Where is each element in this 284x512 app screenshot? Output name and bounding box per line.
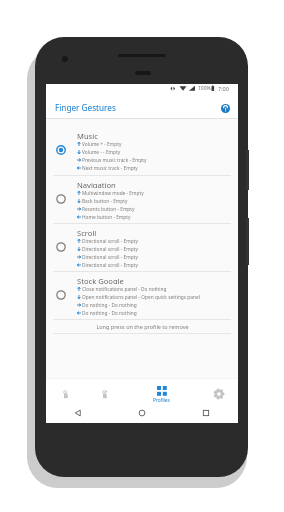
staticText: Do nothing - Do nothing	[82, 302, 137, 309]
staticText: Do nothing - Do nothing	[82, 310, 137, 317]
button[interactable]: Recents	[174, 402, 238, 423]
staticText: Long press on the profile to remove	[96, 323, 189, 330]
staticText: Directional scroll - Empty	[82, 262, 138, 269]
staticText: Stock Google	[77, 276, 124, 284]
staticText: Home button - Empty	[82, 214, 131, 221]
staticText: Navigation	[77, 180, 116, 188]
button[interactable]: Music	[46, 119, 238, 175]
staticText: Close notifications panel - Do nothing	[82, 286, 167, 293]
button[interactable]: Two finger gestures	[85, 379, 124, 402]
staticText: Next music track - Empty	[82, 165, 138, 172]
button[interactable]: Settings	[199, 379, 238, 402]
staticText: Volume + - Empty	[82, 141, 122, 148]
staticText: Previous music track - Empty	[82, 157, 147, 164]
button[interactable]: Scroll	[46, 224, 238, 271]
button[interactable]: Home	[110, 402, 174, 423]
staticText: Finger Gestures	[55, 102, 116, 113]
staticText: Profiles	[153, 397, 170, 404]
staticText: Music	[77, 131, 98, 139]
button[interactable]: Help	[218, 101, 232, 115]
staticText: Directional scroll - Empty	[82, 254, 138, 261]
staticText: Directional scroll - Empty	[82, 246, 138, 253]
staticText: Directional scroll - Empty	[82, 238, 138, 245]
button[interactable]: Single finger gestures	[46, 379, 85, 402]
button[interactable]: Stock Google	[46, 272, 238, 319]
staticText: Recents button - Empty	[82, 206, 135, 213]
staticText: Back button - Empty	[82, 198, 128, 205]
staticText: Open notifications panel - Open quick se…	[82, 294, 200, 301]
staticText: Scroll	[77, 228, 97, 236]
staticText: 100%	[198, 85, 211, 92]
staticText: Multiwindow mode - Empty	[82, 190, 144, 197]
button[interactable]: Profiles	[124, 379, 199, 402]
button[interactable]: Back	[46, 402, 110, 423]
staticText: Volume - - Empty	[82, 149, 121, 156]
staticText: 7:00	[218, 85, 229, 92]
button[interactable]: Navigation	[46, 176, 238, 223]
